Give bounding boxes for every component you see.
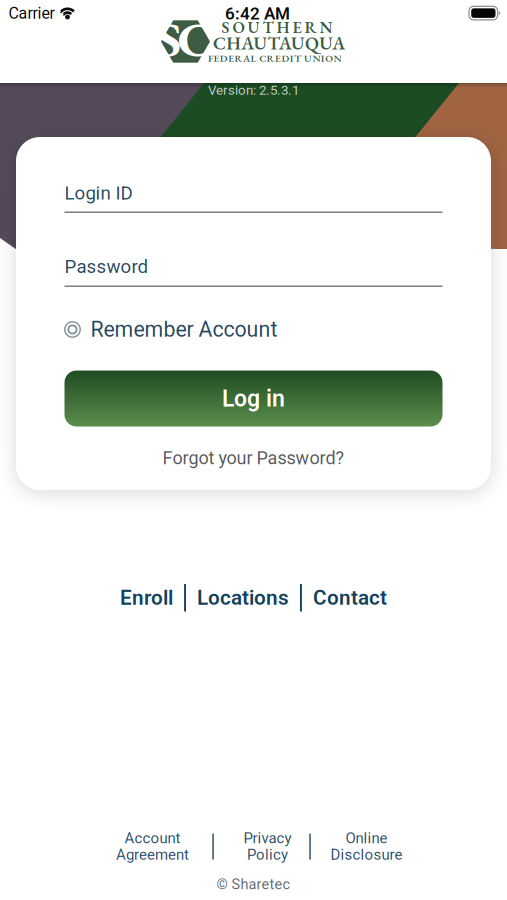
staticText: Agreement: [116, 846, 189, 863]
staticText: Login ID: [64, 182, 132, 204]
staticText: Password: [64, 256, 148, 278]
button[interactable]: Forgot your Password?: [162, 447, 344, 469]
staticText: Version: 2.5.3.1: [208, 82, 299, 98]
button[interactable]: Locations: [197, 586, 289, 610]
staticText: Forgot your Password?: [162, 447, 344, 469]
staticText: Remember Account: [90, 317, 277, 342]
button[interactable]: Login ID: [64, 182, 442, 213]
button[interactable]: Log in: [64, 370, 442, 426]
staticText: Carrier: [8, 4, 54, 23]
staticText: SC: [157, 7, 212, 71]
button[interactable]: Remember Account: [64, 317, 277, 342]
button[interactable]: Online: [306, 829, 426, 863]
button[interactable]: Enroll: [120, 586, 173, 610]
staticText: 6:42 AM: [225, 4, 290, 24]
staticText: Policy: [247, 846, 288, 863]
staticText: CHAUTAUQUA: [213, 31, 345, 55]
staticText: Contact: [313, 586, 387, 610]
staticText: FEDERAL CREDIT UNION: [208, 51, 342, 65]
staticText: Enroll: [120, 586, 173, 610]
staticText: Log in: [222, 385, 285, 412]
staticText: Online: [345, 829, 387, 847]
staticText: Disclosure: [330, 846, 402, 863]
button[interactable]: Password: [64, 256, 442, 287]
button[interactable]: Contact: [313, 586, 387, 610]
staticText: Privacy: [243, 829, 291, 847]
staticText: © Sharetec: [216, 876, 290, 893]
staticText: Account: [124, 829, 180, 847]
button[interactable]: Privacy: [207, 829, 327, 863]
staticText: SOUTHERN: [221, 16, 332, 38]
staticText: Locations: [197, 586, 289, 610]
button[interactable]: Account: [92, 829, 212, 863]
